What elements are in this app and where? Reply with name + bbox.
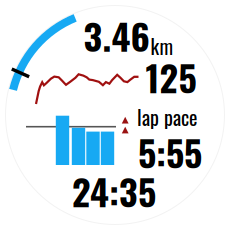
staticText: km	[150, 31, 173, 61]
staticText: lap pace	[137, 102, 197, 132]
staticText: 3.46	[83, 9, 149, 62]
staticText: 24:35	[72, 164, 156, 218]
staticText: 5:55	[138, 125, 202, 179]
staticText: 125	[145, 50, 196, 104]
